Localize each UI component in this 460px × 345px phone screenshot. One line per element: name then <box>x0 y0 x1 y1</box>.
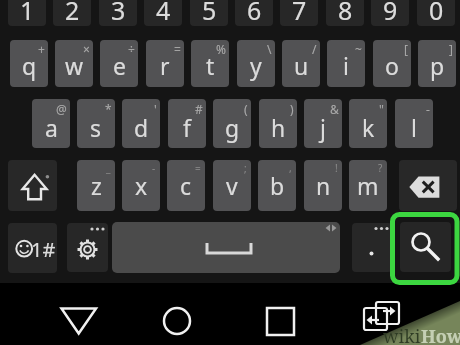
button[interactable]: o <box>373 40 411 87</box>
button[interactable]: r <box>146 40 184 87</box>
staticText: × <box>83 41 90 57</box>
staticText: k <box>362 112 375 143</box>
staticText: How <box>421 324 460 345</box>
staticText: j <box>320 112 326 143</box>
button[interactable]: f <box>168 99 206 148</box>
staticText: 0 <box>429 0 444 26</box>
staticText: s <box>90 112 102 143</box>
button[interactable]: 1 <box>8 0 46 26</box>
staticText: r <box>160 50 170 81</box>
button[interactable]: x <box>122 160 160 211</box>
button[interactable]: 9 <box>371 0 409 26</box>
staticText: b <box>270 170 285 201</box>
button[interactable]: 6 <box>235 0 273 26</box>
staticText: v <box>226 170 238 201</box>
staticText: ' <box>154 101 157 117</box>
button[interactable]: 1# <box>8 223 57 273</box>
staticText: - <box>152 161 156 175</box>
staticText: f <box>183 112 191 143</box>
staticText: / <box>312 41 317 57</box>
staticText: ] <box>449 41 453 57</box>
button[interactable] <box>352 223 392 272</box>
button[interactable] <box>67 223 108 272</box>
staticText: p <box>430 50 445 81</box>
staticText: ÷ <box>128 41 135 57</box>
button[interactable]: c <box>167 160 205 211</box>
button[interactable]: y <box>237 40 275 87</box>
button[interactable]: 8 <box>326 0 364 26</box>
staticText: 9 <box>383 0 398 26</box>
button[interactable]: l <box>395 99 433 148</box>
staticText: d <box>134 112 149 143</box>
button[interactable] <box>8 160 57 211</box>
button[interactable]: 3 <box>99 0 137 26</box>
staticText: 7 <box>292 0 307 26</box>
staticText: % <box>216 41 226 57</box>
staticText: * <box>105 101 112 117</box>
button[interactable] <box>400 222 451 272</box>
button[interactable] <box>258 298 302 342</box>
button[interactable]: b <box>258 160 296 211</box>
staticText: 3 <box>111 0 126 26</box>
staticText: u <box>294 50 309 81</box>
staticText: ) <box>290 101 294 117</box>
staticText: i <box>343 50 349 81</box>
staticText: x <box>135 170 148 201</box>
staticText: t <box>206 50 215 81</box>
staticText: - <box>426 101 430 117</box>
button[interactable]: w <box>55 40 93 87</box>
staticText: _ <box>106 161 111 175</box>
button[interactable]: 7 <box>280 0 318 26</box>
button[interactable] <box>360 298 404 342</box>
staticText: , <box>289 161 292 175</box>
staticText: [ <box>404 41 408 57</box>
button[interactable]: u <box>282 40 320 87</box>
staticText: 6 <box>247 0 262 26</box>
staticText: = <box>174 41 181 57</box>
staticText: @ <box>56 101 67 117</box>
button[interactable]: h <box>259 99 297 148</box>
staticText: \ <box>267 41 272 57</box>
button[interactable] <box>155 298 199 342</box>
staticText: z <box>91 170 102 201</box>
button[interactable]: 0 <box>417 0 455 26</box>
button[interactable]: j <box>304 99 342 148</box>
staticText: 2 <box>65 0 80 26</box>
staticText: 5 <box>202 0 217 26</box>
button[interactable]: d <box>122 99 160 148</box>
staticText: # <box>195 101 203 117</box>
staticText: + <box>38 41 45 57</box>
button[interactable]: q <box>10 40 48 87</box>
staticText: o <box>385 50 399 81</box>
button[interactable]: g <box>213 99 251 148</box>
staticText: = <box>195 161 201 175</box>
button[interactable] <box>399 160 457 211</box>
button[interactable]: p <box>418 40 456 87</box>
button[interactable]: z <box>77 160 115 211</box>
button[interactable]: k <box>349 99 387 148</box>
button[interactable]: v <box>213 160 251 211</box>
staticText: ( <box>244 101 248 117</box>
staticText: ? <box>378 161 383 175</box>
button[interactable]: 2 <box>53 0 91 26</box>
button[interactable]: s <box>77 99 115 148</box>
staticText: " <box>379 101 384 117</box>
button[interactable]: n <box>304 160 342 211</box>
button[interactable]: a <box>32 99 70 148</box>
staticText: 1# <box>31 236 56 263</box>
staticText: m <box>357 170 379 201</box>
staticText: 8 <box>338 0 353 26</box>
button[interactable] <box>112 222 340 273</box>
staticText: ! <box>335 161 338 175</box>
button[interactable]: 5 <box>190 0 228 26</box>
button[interactable] <box>56 298 100 342</box>
button[interactable]: e <box>100 40 138 87</box>
staticText: c <box>180 170 192 201</box>
staticText: n <box>316 170 331 201</box>
button[interactable]: 4 <box>144 0 182 26</box>
staticText: 4 <box>156 0 171 26</box>
staticText: q <box>22 50 37 81</box>
button[interactable]: t <box>191 40 229 87</box>
button[interactable]: m <box>349 160 387 211</box>
button[interactable]: i <box>327 40 365 87</box>
